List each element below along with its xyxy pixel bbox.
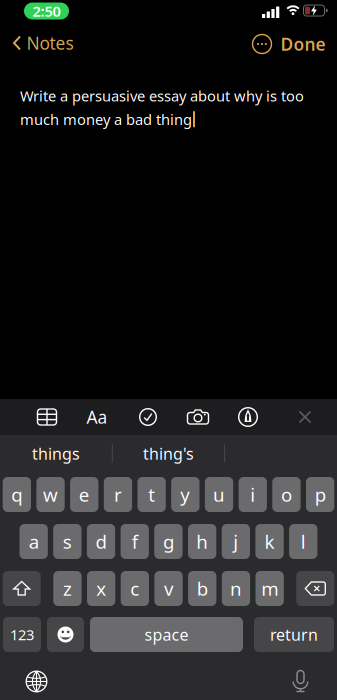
button[interactable]: z	[53, 571, 82, 606]
button[interactable]: s	[53, 524, 81, 559]
staticText: r	[114, 482, 122, 507]
staticText: t	[148, 482, 155, 507]
staticText: l	[301, 529, 306, 554]
button[interactable]: Emoji	[47, 617, 84, 652]
button[interactable]: r	[104, 477, 132, 512]
staticText: m	[261, 576, 278, 601]
staticText: a	[29, 529, 39, 554]
button[interactable]: More options	[252, 34, 272, 54]
button[interactable]: Next keyboard	[16, 661, 56, 700]
button[interactable]: Space	[90, 617, 243, 652]
staticText: 2:50	[32, 1, 60, 21]
button[interactable]: Delete	[296, 571, 334, 606]
staticText: h	[196, 529, 208, 554]
button[interactable]: e	[70, 477, 98, 512]
button[interactable]: g	[154, 524, 183, 559]
staticText: x	[96, 576, 106, 601]
staticText: return	[270, 624, 318, 645]
button[interactable]: Shift	[3, 571, 41, 606]
staticText: much money a bad thing	[20, 109, 192, 129]
button[interactable]: Checklist	[128, 399, 168, 435]
staticText: Aa	[86, 405, 107, 428]
button[interactable]: h	[188, 524, 216, 559]
staticText: things	[32, 443, 80, 464]
staticText: b	[197, 576, 208, 601]
button[interactable]: a	[19, 524, 48, 559]
staticText: o	[281, 482, 292, 507]
button[interactable]: Return	[254, 617, 334, 652]
button[interactable]: i	[239, 477, 267, 512]
staticText: c	[130, 576, 139, 601]
staticText: k	[265, 529, 275, 554]
button[interactable]: p	[306, 477, 334, 512]
button[interactable]: y	[171, 477, 199, 512]
staticText: u	[213, 482, 225, 507]
button[interactable]: u	[205, 477, 233, 512]
button[interactable]: l	[289, 524, 317, 559]
button[interactable]: q	[3, 477, 31, 512]
staticText: q	[11, 482, 22, 507]
staticText: Done	[280, 32, 325, 55]
button[interactable]: w	[36, 477, 65, 512]
staticText: g	[163, 529, 174, 554]
staticText: w	[43, 482, 58, 507]
staticText: i	[250, 482, 255, 507]
staticText: Write a persuasive essay about why is to…	[20, 86, 304, 105]
staticText: s	[63, 529, 72, 554]
button[interactable]: o	[272, 477, 301, 512]
button[interactable]: Markup	[228, 399, 268, 435]
button[interactable]: Text formatting	[77, 399, 117, 435]
button[interactable]: c	[121, 571, 149, 606]
button[interactable]: Insert photo	[178, 399, 218, 435]
button[interactable]: d	[87, 524, 115, 559]
button[interactable]: Dismiss toolbar	[287, 399, 323, 435]
button[interactable]: j	[222, 524, 250, 559]
button[interactable]: v	[154, 571, 183, 606]
button[interactable]: Return to call	[24, 2, 69, 19]
staticText: n	[230, 576, 242, 601]
button[interactable]: x	[87, 571, 115, 606]
staticText: thing's	[143, 443, 194, 464]
button[interactable]: Numbers	[3, 617, 41, 652]
staticText: 123	[10, 625, 34, 644]
staticText: p	[315, 482, 326, 507]
button[interactable]: Insert table	[27, 399, 67, 435]
staticText: v	[164, 576, 173, 601]
button[interactable]: thing's	[113, 435, 223, 472]
button[interactable]: Done	[280, 32, 325, 55]
staticText: Notes	[26, 31, 73, 54]
staticText: f	[132, 529, 138, 554]
button[interactable]: t	[137, 477, 166, 512]
staticText: space	[144, 624, 188, 645]
staticText: d	[96, 529, 107, 554]
button[interactable]: things	[1, 435, 111, 472]
staticText: z	[63, 576, 72, 601]
button[interactable]: f	[121, 524, 149, 559]
button[interactable]: Dictate	[280, 661, 320, 700]
button[interactable]: k	[255, 524, 284, 559]
staticText: j	[233, 529, 238, 554]
button[interactable]: Back to Notes	[12, 25, 73, 61]
button[interactable]: b	[188, 571, 216, 606]
staticText: e	[79, 482, 90, 507]
button[interactable]: m	[255, 571, 284, 606]
button[interactable]: n	[222, 571, 250, 606]
staticText: y	[180, 482, 190, 507]
